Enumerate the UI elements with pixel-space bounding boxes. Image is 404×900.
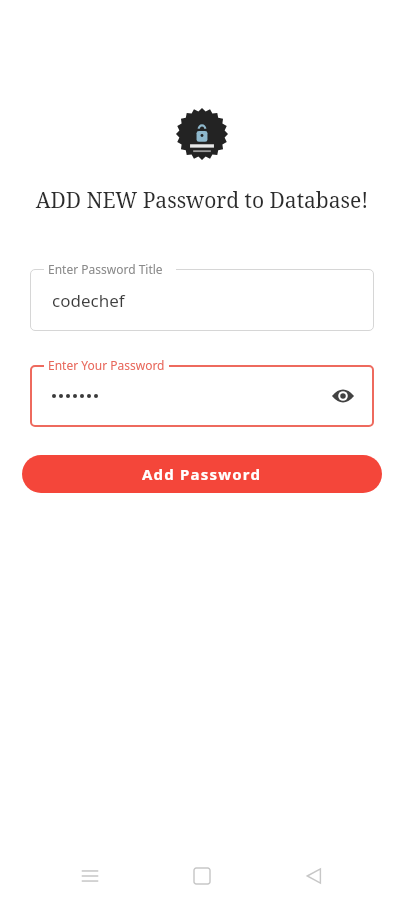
staticText: ADD NEW Password to Database! — [0, 186, 404, 215]
button[interactable]: Show password — [328, 381, 358, 411]
button[interactable] — [30, 365, 374, 427]
button[interactable] — [30, 269, 374, 331]
other: App logo — [176, 108, 228, 160]
staticText: Enter Password Title — [48, 261, 163, 277]
button[interactable]: Add Password — [22, 455, 382, 493]
button[interactable]: Home — [182, 856, 222, 896]
button[interactable]: Back — [294, 856, 334, 896]
staticText: codechef — [52, 289, 125, 312]
button[interactable]: Recent apps — [70, 856, 110, 896]
staticText: Enter Your Password — [48, 357, 165, 373]
staticText: Add Password — [142, 464, 262, 484]
